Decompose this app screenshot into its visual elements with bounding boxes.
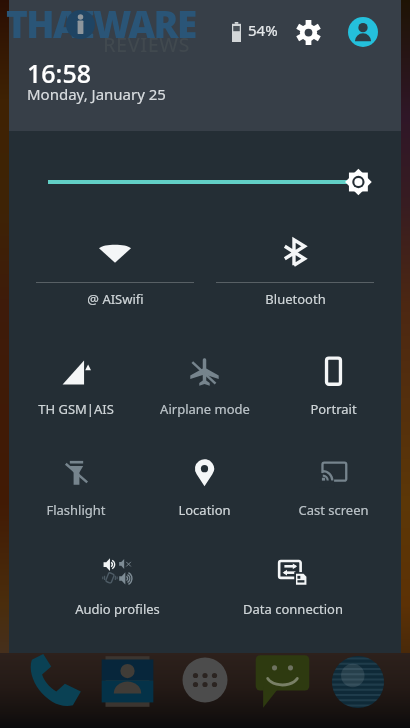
- button[interactable]: Airplane mode: [140, 349, 269, 419]
- button[interactable]: Phone: [25, 654, 82, 711]
- staticText: TH GSM|AIS: [38, 400, 114, 418]
- button[interactable]: Messaging: [254, 653, 311, 710]
- button[interactable]: Brightness: [9, 131, 401, 201]
- staticText: Cast screen: [298, 501, 369, 519]
- button[interactable]: @ AISwifi: [25, 231, 205, 311]
- staticText: @ AISwifi: [87, 290, 144, 308]
- button[interactable]: All apps: [180, 655, 230, 705]
- staticText: Location: [178, 501, 231, 519]
- staticText: Flashlight: [46, 501, 106, 519]
- button[interactable]: TH GSM|AIS: [12, 349, 140, 419]
- staticText: Data connection: [243, 600, 343, 618]
- staticText: Monday, January 25: [27, 84, 166, 104]
- staticText: Bluetooth: [265, 290, 326, 308]
- button[interactable]: Location: [140, 450, 269, 520]
- staticText: REVIEWS: [103, 31, 190, 58]
- button[interactable]: Settings: [296, 20, 321, 45]
- button[interactable]: Flashlight: [12, 450, 140, 520]
- button[interactable]: Contacts: [100, 654, 155, 709]
- button[interactable]: User profile: [348, 17, 378, 47]
- button[interactable]: Data connection: [205, 549, 380, 619]
- staticText: 54%: [248, 20, 278, 40]
- button[interactable]: Bluetooth: [205, 231, 385, 311]
- staticText: Audio profiles: [75, 600, 160, 618]
- button[interactable]: Portrait: [269, 349, 398, 419]
- button[interactable]: Cast screen: [269, 450, 398, 520]
- button[interactable]: Browser: [329, 653, 387, 711]
- staticText: THAIWARE: [6, 0, 196, 48]
- staticText: Airplane mode: [160, 400, 250, 418]
- button[interactable]: Audio profiles: [30, 549, 205, 619]
- staticText: Portrait: [310, 400, 357, 418]
- staticText: 16:58: [27, 56, 92, 90]
